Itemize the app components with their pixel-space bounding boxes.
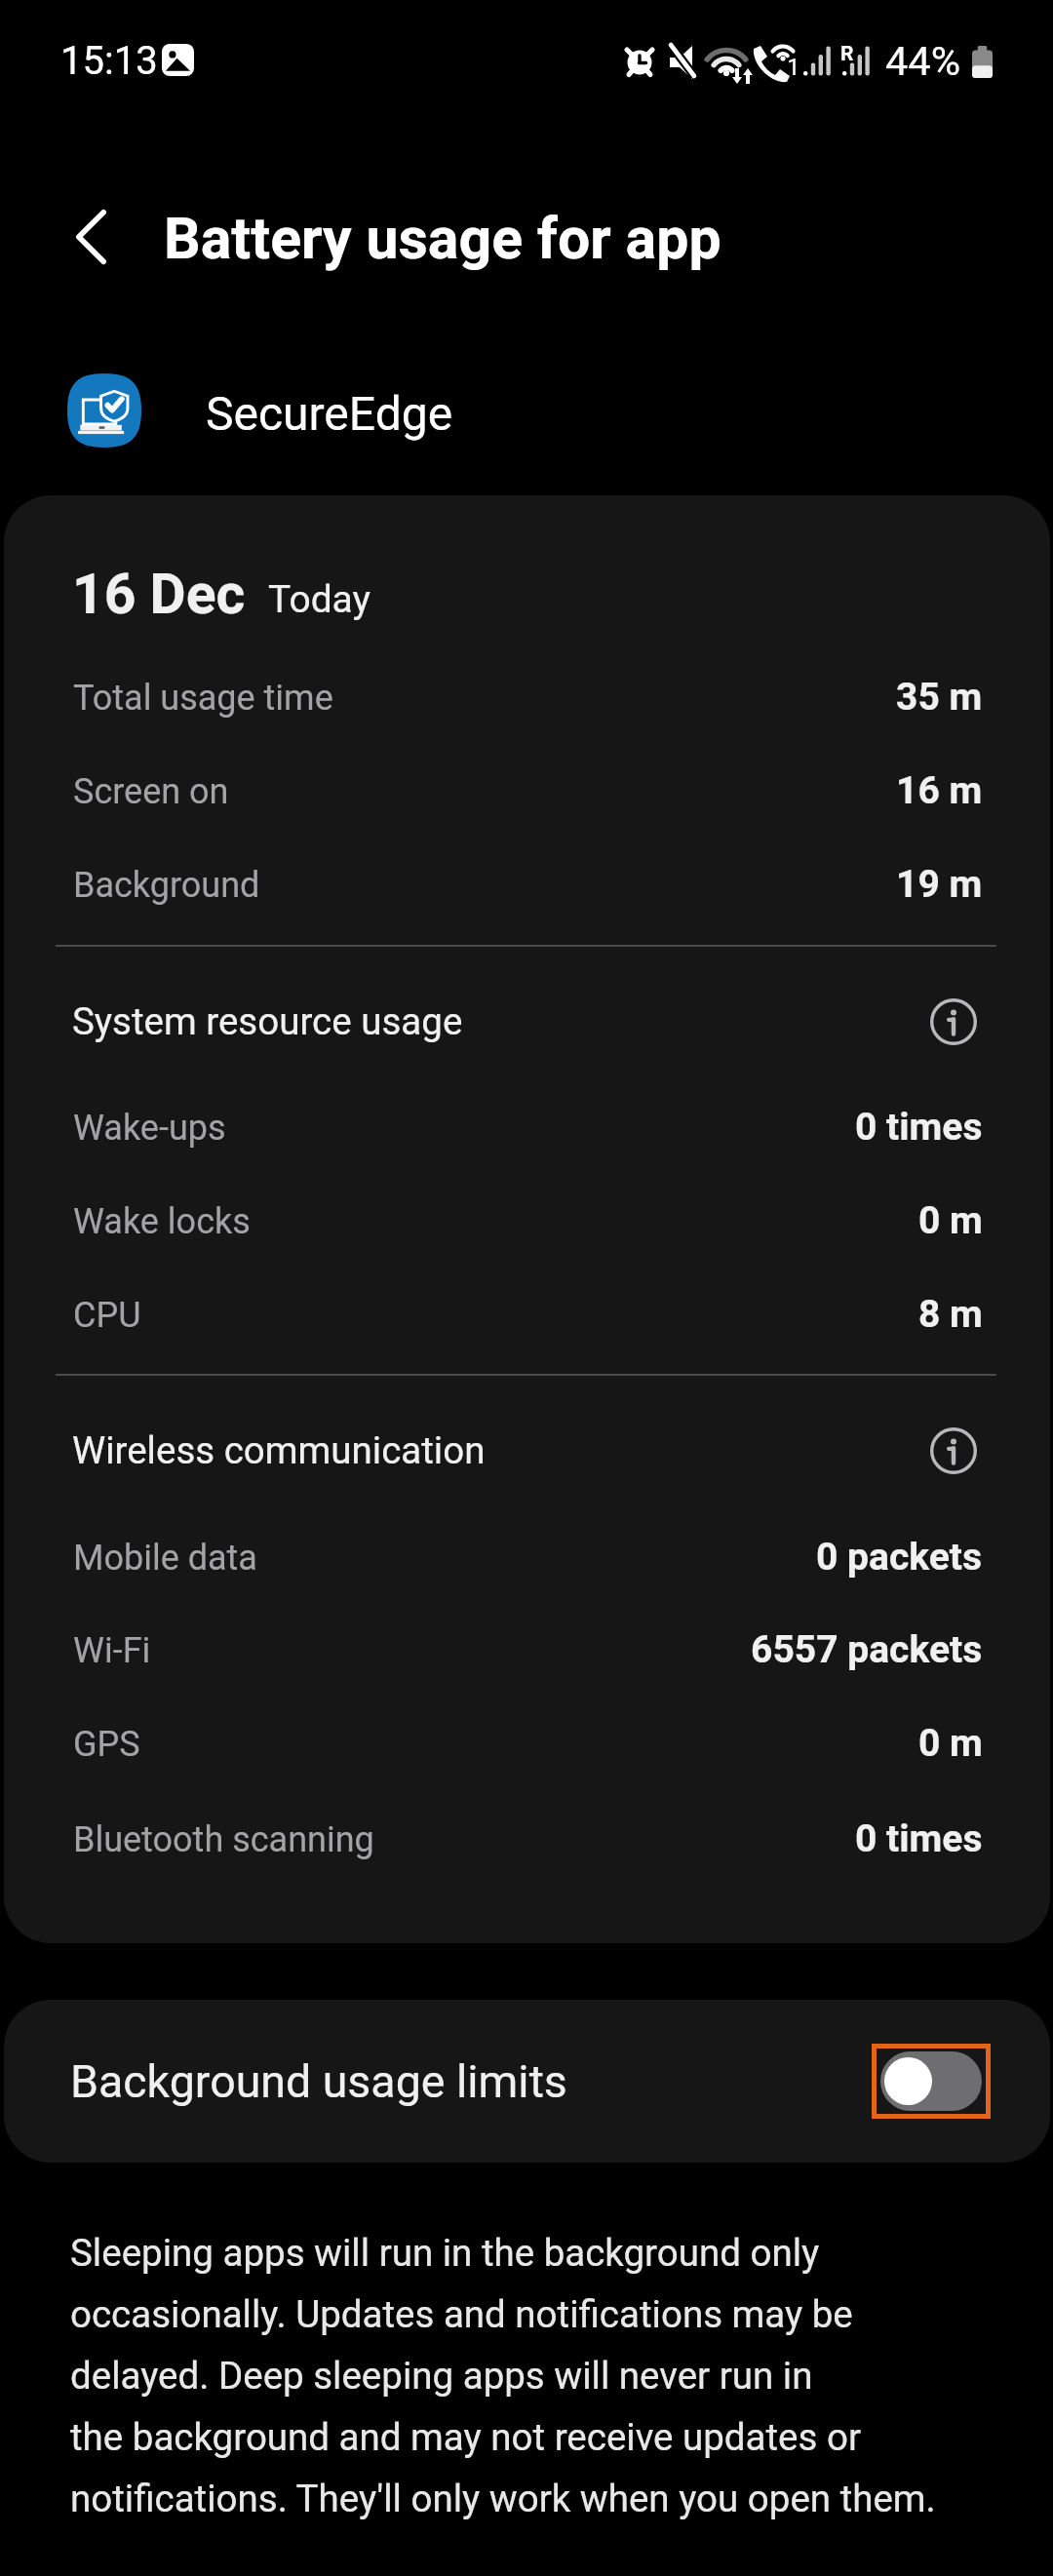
staticText: Background usage limits [70,2055,567,2108]
staticText: 0 m [918,1198,983,1243]
staticText: 8 m [918,1292,983,1337]
staticText: GPS [73,1724,140,1765]
button[interactable]: Background usage limits toggle, off [872,2044,991,2119]
staticText: SecureEdge [206,386,453,441]
staticText: Bluetooth scanning [73,1819,374,1860]
staticText: Mobile data [73,1538,257,1579]
staticText: Battery usage for app [164,205,721,272]
staticText: Sleeping apps will run in the background… [70,2231,1006,2520]
button[interactable]: Background usage limits [4,2000,1050,2163]
staticText: 15:13 [60,38,158,84]
staticText: CPU [73,1295,141,1336]
staticText: Background [73,865,260,906]
staticText: 0 times [855,1816,983,1861]
staticText: 0 m [918,1721,983,1766]
button[interactable]: About Wireless communication [918,1416,989,1486]
staticText: R [840,42,854,66]
staticText: 16 m [896,768,983,813]
staticText: 0 packets [816,1535,983,1580]
button[interactable]: Navigate up [56,202,126,272]
staticText: Screen on [73,771,229,812]
staticText: 16 Dec [72,562,246,627]
staticText: 19 m [896,862,983,907]
staticText: 1 [787,54,800,81]
staticText: Wi-Fi [73,1630,151,1671]
button[interactable] [0,346,1053,475]
staticText: System resource usage [72,999,463,1043]
staticText: 35 m [896,675,983,720]
button[interactable]: About System resource usage [918,987,989,1057]
staticText: 44% [885,37,961,85]
staticText: 6557 packets [751,1627,983,1672]
staticText: Wake-ups [73,1108,226,1149]
staticText: Total usage time [73,678,333,719]
staticText: Today [268,577,371,622]
staticText: 0 times [855,1105,983,1150]
staticText: Wireless communication [72,1428,486,1472]
staticText: Wake locks [73,1201,251,1242]
